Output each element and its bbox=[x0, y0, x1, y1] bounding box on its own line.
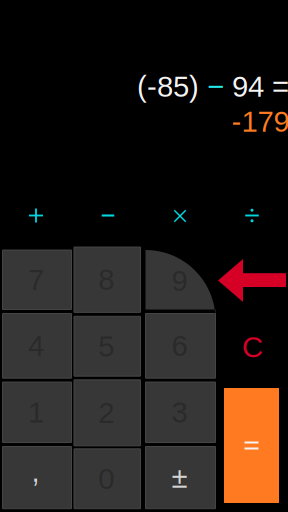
button[interactable]: Equals bbox=[224, 388, 279, 503]
button[interactable]: , bbox=[2, 446, 71, 509]
button[interactable]: 7 bbox=[2, 250, 71, 309]
button[interactable]: 1 bbox=[2, 382, 71, 442]
button[interactable]: Divide bbox=[224, 195, 280, 235]
staticText: 2 bbox=[98, 396, 114, 429]
staticText: ± bbox=[171, 461, 187, 494]
button[interactable]: Multiply bbox=[152, 195, 208, 235]
staticText: 4 bbox=[28, 329, 44, 362]
button[interactable]: 9 bbox=[145, 250, 215, 309]
button[interactable]: ± bbox=[145, 446, 215, 509]
staticText: C bbox=[242, 331, 263, 363]
staticText: 94 = bbox=[224, 70, 288, 103]
staticText: 7 bbox=[28, 263, 44, 296]
staticText: (-85) bbox=[137, 70, 207, 103]
button[interactable]: Add bbox=[8, 195, 64, 235]
button[interactable]: Backspace bbox=[218, 259, 286, 302]
staticText: 5 bbox=[98, 330, 114, 363]
staticText: − bbox=[207, 70, 224, 103]
staticText: 9 bbox=[171, 264, 187, 297]
button[interactable]: C bbox=[220, 321, 284, 373]
staticText: 0 bbox=[98, 462, 114, 495]
staticText: 6 bbox=[171, 329, 187, 362]
button[interactable]: 4 bbox=[2, 313, 71, 378]
staticText: 1 bbox=[28, 396, 44, 429]
staticText: 3 bbox=[171, 396, 187, 429]
staticText: -179 bbox=[231, 105, 288, 138]
staticText: 8 bbox=[98, 263, 114, 296]
button[interactable]: Subtract bbox=[80, 195, 136, 235]
staticText: , bbox=[31, 455, 39, 488]
